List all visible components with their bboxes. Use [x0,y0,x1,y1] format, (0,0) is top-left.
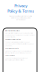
staticText: Information we collect [5,30,20,32]
staticText: Privacy Policy & Terms [7,3,34,14]
staticText: Your choices [5,55,15,56]
staticText: To operate, maintain and improve our ser… [5,41,33,47]
staticText: Sharing your data [5,48,19,49]
staticText: We collect information you provide direc… [5,32,34,38]
staticText: You can review and update your informati… [5,57,28,61]
staticText: How we use information [5,39,21,40]
staticText: We never sell your personal data to any … [5,50,32,54]
staticText: Please read these terms carefully before… [9,15,32,20]
